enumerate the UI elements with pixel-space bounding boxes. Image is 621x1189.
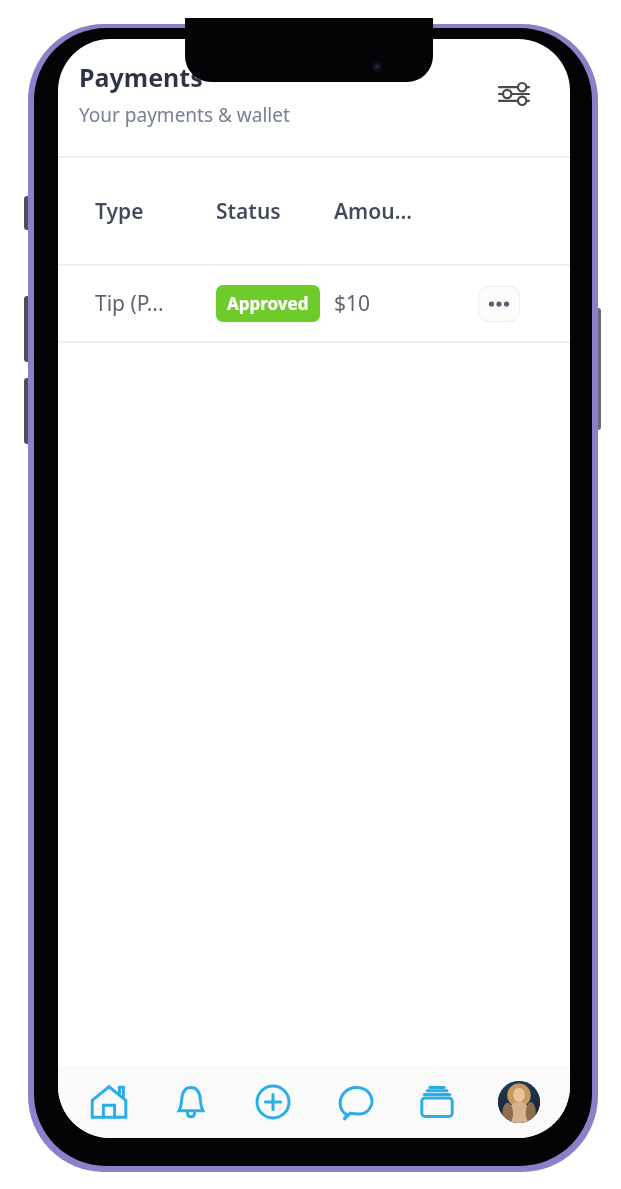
button[interactable]: Messages xyxy=(322,1070,388,1134)
staticText: Your payments & wallet xyxy=(79,102,290,128)
button[interactable]: Tip (P... xyxy=(58,266,570,341)
staticText: Tip (P... xyxy=(95,289,164,318)
staticText: $10 xyxy=(334,289,371,318)
staticText: Status xyxy=(216,197,281,226)
button[interactable]: Profile xyxy=(486,1070,552,1134)
staticText: Approved xyxy=(227,292,309,315)
button[interactable]: My items xyxy=(404,1070,470,1134)
button[interactable]: More options xyxy=(478,286,520,322)
button[interactable]: Notifications xyxy=(158,1070,224,1134)
button[interactable]: Home xyxy=(76,1070,142,1134)
staticText: Type xyxy=(95,197,144,226)
button[interactable]: Filter and settings xyxy=(486,66,542,122)
button[interactable]: Approved xyxy=(227,292,309,315)
staticText: Amou... xyxy=(334,197,413,226)
staticText: Payments xyxy=(79,60,203,94)
button[interactable]: Create new xyxy=(240,1070,306,1134)
